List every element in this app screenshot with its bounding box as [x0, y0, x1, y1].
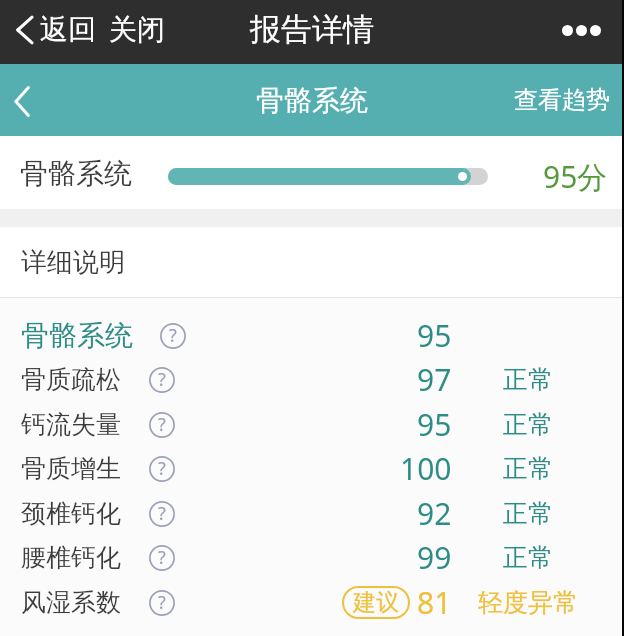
staticText: 建议: [353, 588, 399, 617]
staticText: ?: [158, 545, 166, 570]
staticText: 92: [417, 493, 452, 534]
button[interactable]: 骨质疏松: [0, 357, 624, 402]
button[interactable]: Back: [0, 72, 44, 129]
staticText: ?: [158, 590, 166, 615]
staticText: 骨骼系统: [21, 318, 133, 353]
staticText: 骨骼系统: [20, 156, 132, 191]
staticText: 95: [417, 315, 452, 356]
staticText: ?: [158, 456, 166, 481]
staticText: 查看趋势: [514, 85, 610, 115]
staticText: ?: [158, 367, 166, 392]
button[interactable]: 风湿系数: [0, 580, 624, 624]
staticText: 81: [417, 582, 452, 623]
staticText: 正常: [503, 409, 553, 440]
button[interactable]: 关闭: [100, 12, 173, 47]
staticText: 报告详情: [250, 10, 374, 49]
staticText: 腰椎钙化: [21, 542, 121, 573]
button[interactable]: 骨骼系统: [0, 136, 624, 209]
staticText: 97: [417, 359, 452, 400]
staticText: 骨骼系统: [256, 83, 368, 118]
button[interactable]: 腰椎钙化: [0, 535, 624, 580]
staticText: 返回: [40, 12, 96, 47]
staticText: ?: [158, 412, 166, 437]
staticText: 骨质疏松: [21, 364, 121, 395]
staticText: 99: [417, 537, 452, 578]
button[interactable]: 查看趋势: [500, 64, 624, 136]
staticText: 详细说明: [21, 246, 125, 279]
button[interactable]: 骨质增生: [0, 446, 624, 491]
staticText: ?: [158, 501, 166, 526]
staticText: 95分: [543, 156, 608, 197]
button[interactable]: 颈椎钙化: [0, 491, 624, 535]
button[interactable]: 钙流失量: [0, 402, 624, 446]
button[interactable]: More options: [546, 15, 624, 46]
staticText: 风湿系数: [21, 587, 121, 618]
button[interactable]: 返回: [0, 12, 100, 47]
staticText: 95: [417, 404, 452, 445]
button[interactable]: 详细说明: [0, 227, 624, 298]
staticText: 正常: [503, 453, 553, 484]
staticText: 100: [400, 448, 452, 489]
staticText: 钙流失量: [21, 409, 121, 440]
staticText: ?: [169, 323, 177, 348]
staticText: 骨质增生: [21, 453, 121, 484]
staticText: 轻度异常: [478, 587, 578, 618]
staticText: 颈椎钙化: [21, 498, 121, 529]
button[interactable]: 骨骼系统: [0, 313, 624, 357]
staticText: 正常: [503, 498, 553, 529]
staticText: 正常: [503, 542, 553, 573]
staticText: 正常: [503, 364, 553, 395]
